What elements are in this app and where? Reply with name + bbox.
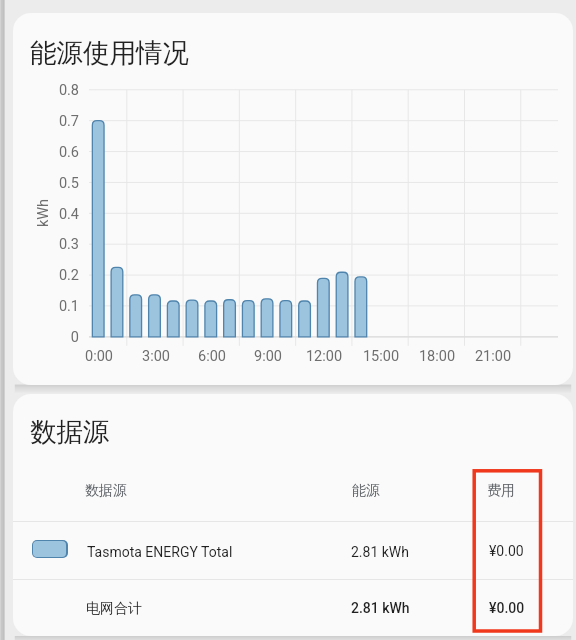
staticText: 12:00 <box>284 348 364 365</box>
staticText: 0.5 <box>19 175 79 192</box>
staticText: 能源 <box>352 482 380 500</box>
staticText: kWh <box>35 183 52 243</box>
staticText: 数据源 <box>30 415 110 448</box>
staticText: 0.6 <box>19 144 79 161</box>
staticText: 电网合计 <box>86 600 142 618</box>
staticText: 21:00 <box>453 348 533 365</box>
staticText: 费用 <box>487 482 515 500</box>
staticText: 0.3 <box>19 236 79 253</box>
other: Tasmota ENERGY Total colour swatch <box>32 540 68 558</box>
button[interactable]: 电网合计 <box>13 579 573 636</box>
staticText: 0.2 <box>19 267 79 284</box>
button[interactable]: Tasmota ENERGY Total colour swatch <box>13 522 573 579</box>
staticText: 15:00 <box>341 348 421 365</box>
staticText: 2.81 kWh <box>351 544 409 560</box>
staticText: 0.8 <box>19 82 79 99</box>
staticText: 6:00 <box>172 348 252 365</box>
staticText: 0:00 <box>59 348 139 365</box>
staticText: 2.81 kWh <box>351 600 410 616</box>
staticText: 3:00 <box>116 348 196 365</box>
staticText: Tasmota ENERGY Total <box>87 544 233 560</box>
staticText: 0 <box>19 329 79 346</box>
staticText: 能源使用情况 <box>30 36 189 69</box>
staticText: 数据源 <box>85 482 127 500</box>
staticText: 9:00 <box>228 348 308 365</box>
staticText: ¥0.00 <box>489 543 524 559</box>
staticText: 0.7 <box>19 113 79 130</box>
staticText: 0.1 <box>19 298 79 315</box>
staticText: 18:00 <box>397 348 477 365</box>
staticText: ¥0.00 <box>489 600 525 616</box>
staticText: 0.4 <box>19 206 79 223</box>
